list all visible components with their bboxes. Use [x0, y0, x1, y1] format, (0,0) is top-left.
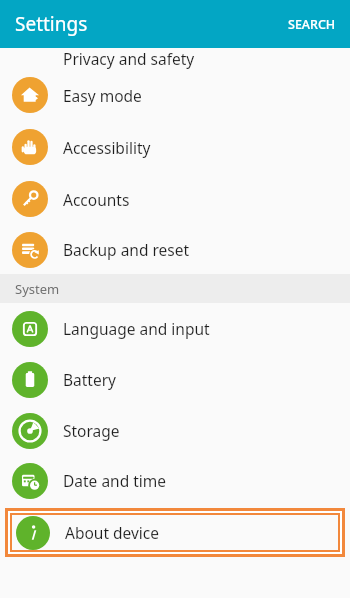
staticText: System [15, 280, 60, 298]
button[interactable]: Backup and reset [0, 225, 350, 274]
staticText: SEARCH [288, 16, 336, 33]
staticText: Settings [15, 11, 88, 37]
button[interactable]: Battery [0, 354, 350, 405]
staticText: Backup and reset [63, 239, 190, 260]
staticText: Language and input [63, 318, 210, 339]
staticText: Date and time [63, 470, 167, 491]
staticText: Easy mode [63, 85, 142, 106]
staticText: Privacy and safety [63, 48, 195, 69]
button[interactable]: SEARCH [274, 2, 350, 47]
button[interactable]: Storage [0, 405, 350, 456]
button[interactable]: Date and time [0, 456, 350, 505]
button[interactable]: Accessibility [0, 121, 350, 173]
button[interactable]: Easy mode [0, 69, 350, 121]
staticText: About device [65, 522, 160, 543]
button[interactable]: Language and input [0, 303, 350, 354]
button[interactable]: Accounts [0, 173, 350, 225]
button[interactable]: About device [12, 515, 338, 550]
staticText: Battery [63, 369, 117, 390]
button[interactable]: Privacy and safety [0, 48, 350, 69]
staticText: Accessibility [63, 137, 151, 158]
staticText: Storage [63, 420, 120, 441]
staticText: Accounts [63, 189, 130, 210]
